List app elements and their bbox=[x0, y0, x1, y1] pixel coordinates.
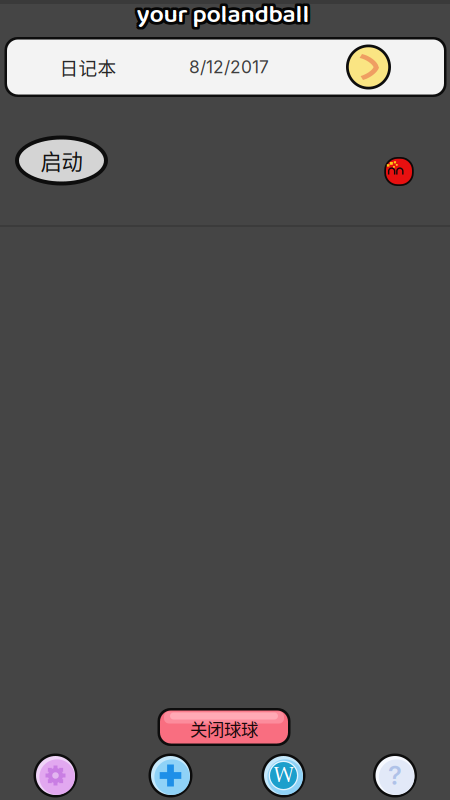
staticText: your polandball bbox=[135, 0, 308, 37]
button[interactable]: WordPress bbox=[261, 753, 305, 797]
button[interactable]: Add bbox=[148, 753, 192, 797]
staticText: your polandball bbox=[135, 0, 308, 38]
staticText: 启动 bbox=[40, 145, 82, 176]
button[interactable]: 启动 bbox=[15, 135, 108, 185]
staticText: your polandball bbox=[134, 0, 307, 35]
staticText: your polandball bbox=[139, 0, 312, 37]
staticText: your polandball bbox=[135, 0, 308, 33]
staticText: your polandball bbox=[139, 0, 312, 35]
staticText: 关闭球球 bbox=[190, 716, 258, 741]
staticText: your polandball bbox=[138, 0, 311, 37]
staticText: your polandball bbox=[138, 0, 311, 38]
staticText: 8/12/2017 bbox=[189, 56, 269, 77]
staticText: W bbox=[273, 762, 293, 788]
button[interactable]: Settings bbox=[33, 753, 77, 797]
staticText: your polandball bbox=[136, 0, 309, 35]
staticText: your polandball bbox=[138, 0, 311, 33]
button[interactable]: Help bbox=[373, 753, 417, 797]
button[interactable]: Open diary bbox=[346, 44, 391, 89]
staticText: ? bbox=[388, 760, 402, 791]
button[interactable]: Polandball bbox=[384, 156, 414, 186]
staticText: your polandball bbox=[139, 0, 312, 33]
staticText: 日记本 bbox=[59, 53, 116, 80]
staticText: your polandball bbox=[134, 0, 307, 37]
button[interactable]: 日记本 bbox=[59, 53, 116, 80]
staticText: your polandball bbox=[136, 0, 309, 33]
staticText: your polandball bbox=[135, 0, 308, 33]
button[interactable]: 关闭球球 bbox=[157, 708, 290, 746]
staticText: your polandball bbox=[134, 0, 307, 33]
staticText: your polandball bbox=[138, 0, 311, 33]
staticText: your polandball bbox=[136, 0, 309, 38]
